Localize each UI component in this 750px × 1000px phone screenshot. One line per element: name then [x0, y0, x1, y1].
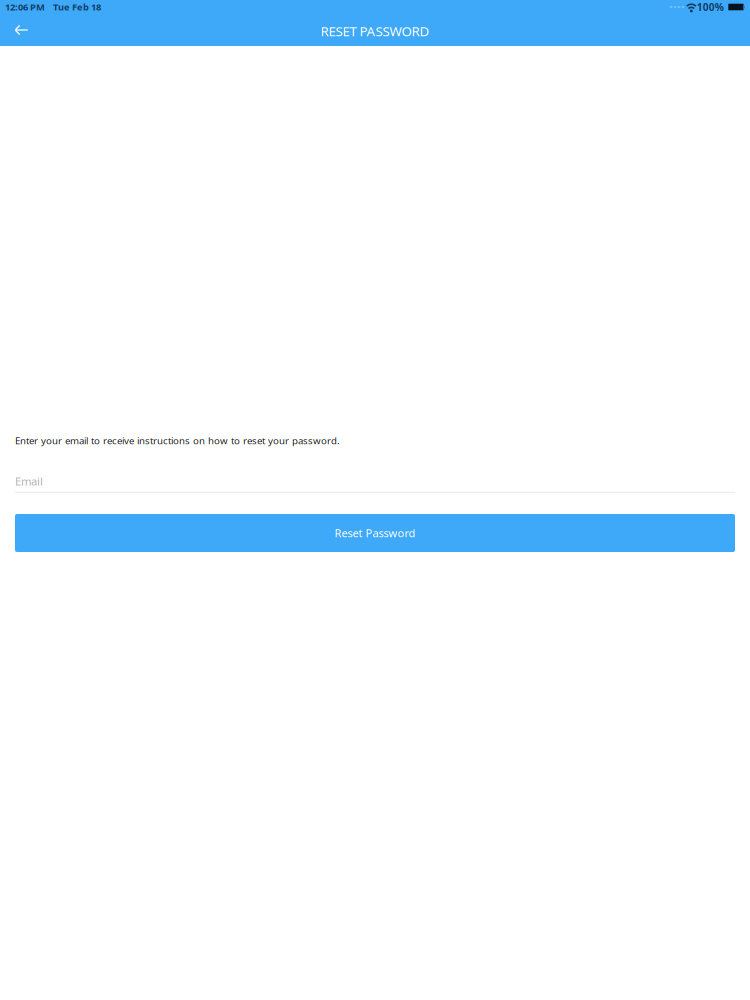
- staticText: Enter your email to receive instructions…: [15, 434, 340, 447]
- staticText: RESET PASSWORD: [320, 22, 429, 40]
- staticText: 100%: [697, 0, 724, 14]
- staticText: Reset Password: [334, 526, 415, 540]
- button[interactable]: Back: [0, 14, 44, 46]
- staticText: Email: [15, 474, 43, 489]
- staticText: 12:06 PM: [5, 1, 45, 13]
- staticText: Tue Feb 18: [53, 1, 101, 13]
- button[interactable]: Email: [15, 474, 735, 493]
- button[interactable]: Reset Password: [15, 514, 735, 552]
